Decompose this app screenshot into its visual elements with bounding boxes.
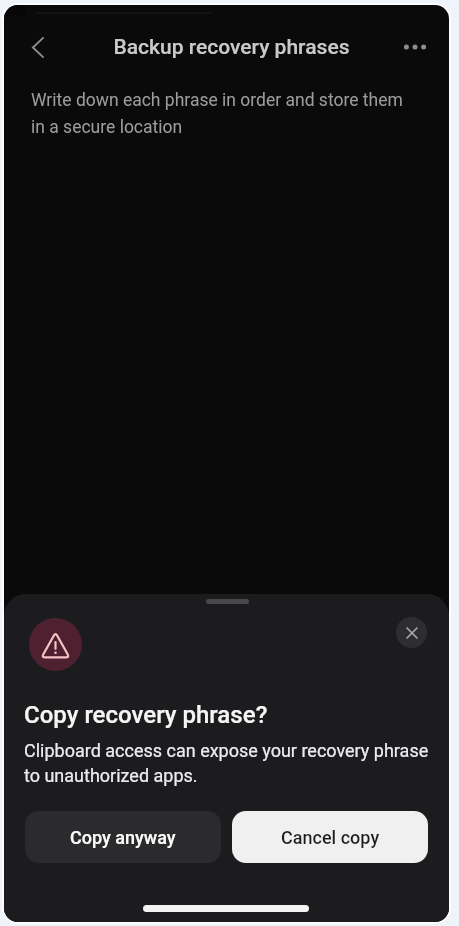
staticText: Copy anyway — [70, 827, 176, 848]
button[interactable]: Cancel copy — [232, 811, 428, 863]
button[interactable]: Copy anyway — [25, 811, 221, 863]
staticText: Clipboard access can expose your recover… — [24, 740, 432, 787]
button[interactable]: More options — [392, 23, 440, 71]
staticText: Cancel copy — [281, 827, 380, 848]
staticText: Backup recovery phrases — [113, 35, 350, 60]
button[interactable]: Close — [396, 617, 427, 648]
staticText: Copy recovery phrase? — [24, 701, 268, 729]
button[interactable]: Back — [15, 23, 63, 71]
staticText: Write down each phrase in order and stor… — [31, 90, 411, 137]
